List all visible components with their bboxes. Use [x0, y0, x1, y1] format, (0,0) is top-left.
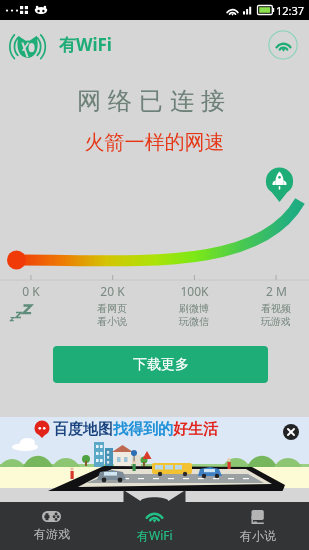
button[interactable]: 有游戏 — [0, 502, 103, 550]
staticText: 0 K — [22, 283, 40, 299]
staticText: 12:37 — [276, 3, 305, 18]
staticText: 有WiFi — [59, 33, 112, 56]
staticText: 网络已连接 — [0, 86, 309, 116]
button[interactable]: 有小说 — [206, 502, 309, 550]
staticText: 看网页 — [97, 302, 127, 315]
staticText: 2 M — [266, 283, 287, 299]
staticText: 100K — [180, 283, 209, 299]
staticText: 下载更多 — [133, 356, 189, 374]
button[interactable]: Close ad — [283, 424, 299, 440]
staticText: 看视频 — [261, 302, 291, 315]
button[interactable]: 下载更多 — [53, 346, 268, 383]
staticText: 有WiFi — [137, 527, 173, 543]
staticText: 20 K — [100, 283, 125, 299]
staticText: 刷微博 — [179, 302, 209, 315]
button[interactable]: 有WiFi — [103, 502, 206, 550]
staticText: 玩游戏 — [261, 315, 291, 328]
staticText: 玩微信 — [179, 315, 209, 328]
staticText: 好生活 — [173, 420, 218, 439]
staticText: 有小说 — [240, 528, 276, 543]
staticText: 找得到的 — [113, 420, 173, 439]
staticText: 看小说 — [97, 315, 127, 328]
staticText: 百度地图 — [53, 420, 113, 439]
staticText: 有游戏 — [34, 526, 70, 541]
button[interactable]: 百度地图 — [0, 417, 309, 488]
staticText: 火箭一样的网速 — [0, 130, 309, 155]
button[interactable]: WiFi status — [268, 30, 298, 60]
